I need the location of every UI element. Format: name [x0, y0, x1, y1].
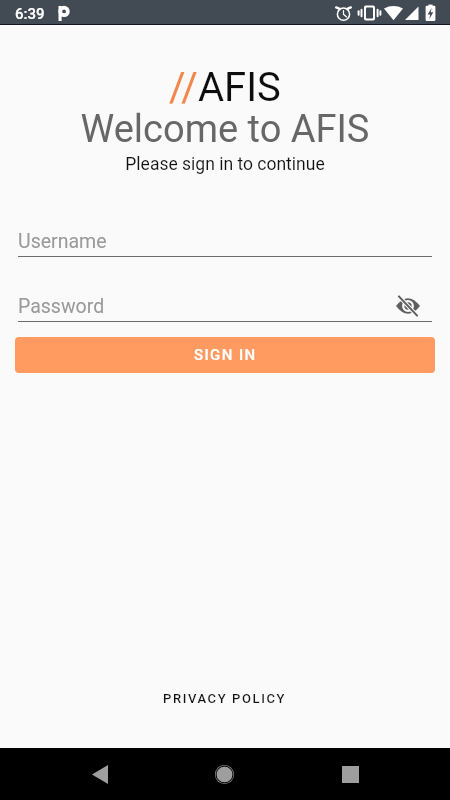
staticText: AFIS: [198, 64, 281, 111]
button[interactable]: PRIVACY POLICY: [155, 686, 295, 711]
staticText: //: [169, 64, 198, 111]
staticText: Welcome to AFIS: [0, 107, 450, 152]
button[interactable]: Back: [74, 756, 126, 792]
button[interactable]: Show password: [393, 292, 423, 319]
button[interactable]: Recents: [324, 756, 376, 792]
staticText: Please sign in to continue: [0, 154, 450, 175]
staticText: 6:39: [15, 5, 45, 23]
staticText: Password: [18, 295, 105, 318]
button[interactable]: Home: [198, 755, 250, 793]
staticText: PRIVACY POLICY: [163, 691, 287, 706]
staticText: Username: [18, 230, 107, 253]
button[interactable]: SIGN IN: [15, 337, 435, 373]
staticText: SIGN IN: [194, 346, 257, 364]
button[interactable]: Password: [18, 295, 432, 322]
button[interactable]: Username: [18, 230, 432, 257]
